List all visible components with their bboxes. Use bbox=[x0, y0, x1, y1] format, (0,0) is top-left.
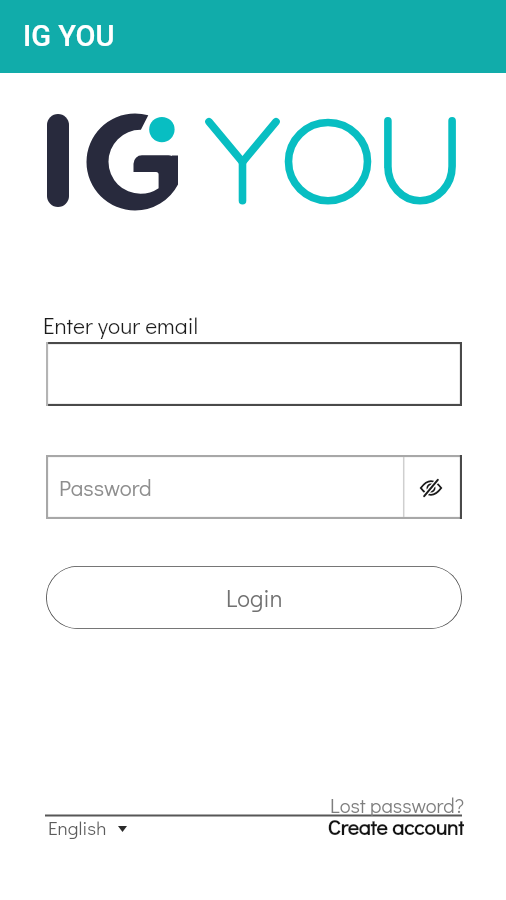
button[interactable]: Lost password? bbox=[264, 792, 464, 816]
staticText: English bbox=[48, 815, 107, 840]
button[interactable]: Show password bbox=[404, 455, 462, 519]
staticText: Lost password? bbox=[264, 792, 464, 816]
button[interactable]: Create account bbox=[264, 813, 464, 839]
staticText: IG YOU bbox=[23, 19, 115, 53]
button[interactable]: English bbox=[48, 815, 127, 840]
staticText: Password bbox=[59, 473, 152, 502]
button[interactable]: Login bbox=[46, 566, 462, 629]
staticText: Create account bbox=[264, 813, 464, 839]
staticText: Login bbox=[226, 582, 283, 613]
button[interactable] bbox=[46, 342, 462, 406]
staticText: Enter your email bbox=[43, 310, 199, 340]
